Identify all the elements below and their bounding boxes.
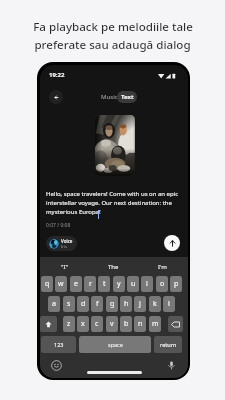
button[interactable]: Back bbox=[49, 90, 63, 104]
staticText: u bbox=[131, 279, 136, 289]
button[interactable]: j bbox=[134, 296, 146, 312]
staticText: j bbox=[139, 299, 141, 309]
staticText: r bbox=[89, 279, 92, 289]
button[interactable]: z bbox=[63, 316, 75, 332]
button[interactable]: y bbox=[113, 276, 125, 292]
button[interactable]: w bbox=[55, 276, 67, 292]
staticText: Voice bbox=[61, 238, 73, 244]
button[interactable]: l bbox=[163, 296, 175, 312]
staticText: Text bbox=[121, 93, 134, 101]
staticText: t bbox=[103, 279, 106, 289]
button[interactable]: k bbox=[149, 296, 161, 312]
button[interactable]: Send bbox=[164, 235, 180, 251]
staticText: o bbox=[160, 279, 165, 289]
button[interactable]: "I" bbox=[40, 258, 89, 276]
staticText: f bbox=[96, 299, 99, 309]
staticText: "I" bbox=[61, 263, 68, 271]
button[interactable]: g bbox=[106, 296, 118, 312]
staticText: a bbox=[52, 299, 56, 309]
button[interactable]: b bbox=[120, 316, 132, 332]
staticText: 19:22 bbox=[49, 71, 65, 79]
staticText: Fa playback pe melodiile tale bbox=[33, 19, 193, 35]
button[interactable] bbox=[168, 316, 183, 332]
button[interactable]: f bbox=[91, 296, 103, 312]
button[interactable]: Voice bbox=[46, 236, 77, 251]
staticText: y bbox=[117, 279, 121, 289]
button[interactable]: Emoji bbox=[51, 360, 62, 371]
staticText: 123 bbox=[54, 341, 64, 348]
staticText: h bbox=[124, 299, 129, 309]
button[interactable]: e bbox=[70, 276, 82, 292]
button[interactable]: I'm bbox=[138, 258, 187, 276]
staticText: s bbox=[67, 299, 71, 309]
button[interactable]: v bbox=[106, 316, 118, 332]
button[interactable]: h bbox=[120, 296, 132, 312]
button[interactable]: Music bbox=[99, 91, 120, 103]
staticText: q bbox=[45, 279, 50, 289]
button[interactable]: s bbox=[63, 296, 75, 312]
staticText: w bbox=[58, 279, 64, 289]
staticText: preferate sau adaugă dialog bbox=[34, 37, 191, 53]
button[interactable]: Text bbox=[117, 91, 137, 103]
staticText: I'm bbox=[158, 263, 167, 271]
button[interactable]: d bbox=[77, 296, 89, 312]
button[interactable]: t bbox=[98, 276, 110, 292]
button[interactable]: i bbox=[141, 276, 153, 292]
staticText: The bbox=[108, 263, 119, 271]
staticText: Iris bbox=[61, 244, 67, 249]
button[interactable]: return bbox=[154, 336, 182, 353]
button[interactable]: n bbox=[134, 316, 146, 332]
staticText: space bbox=[108, 341, 123, 348]
staticText: z bbox=[67, 319, 71, 329]
staticText: Hello, space travelers! Come with us on … bbox=[46, 190, 182, 216]
staticText: m bbox=[152, 319, 159, 329]
button[interactable]: p bbox=[170, 276, 182, 292]
staticText: return bbox=[160, 341, 177, 348]
button[interactable]: The bbox=[89, 258, 138, 276]
staticText: 0:07 / 0:08 bbox=[46, 222, 71, 229]
button[interactable]: x bbox=[77, 316, 89, 332]
button[interactable] bbox=[40, 316, 57, 332]
staticText: l bbox=[168, 299, 170, 309]
button[interactable]: u bbox=[127, 276, 139, 292]
button[interactable]: c bbox=[91, 316, 103, 332]
staticText: n bbox=[138, 319, 143, 329]
button[interactable]: r bbox=[84, 276, 96, 292]
staticText: p bbox=[174, 279, 179, 289]
staticText: e bbox=[74, 279, 78, 289]
button[interactable]: a bbox=[48, 296, 60, 312]
staticText: c bbox=[95, 319, 99, 329]
staticText: d bbox=[81, 299, 86, 309]
staticText: Music bbox=[101, 93, 118, 101]
button[interactable]: q bbox=[41, 276, 53, 292]
staticText: v bbox=[110, 319, 114, 329]
staticText: i bbox=[146, 279, 148, 289]
button[interactable]: m bbox=[149, 316, 161, 332]
button[interactable]: 123 bbox=[41, 336, 76, 353]
staticText: x bbox=[81, 319, 85, 329]
button[interactable]: o bbox=[156, 276, 168, 292]
staticText: k bbox=[153, 299, 157, 309]
button[interactable]: Voice input bbox=[166, 360, 177, 371]
staticText: g bbox=[110, 299, 115, 309]
button[interactable]: space bbox=[79, 336, 151, 353]
staticText: b bbox=[124, 319, 129, 329]
